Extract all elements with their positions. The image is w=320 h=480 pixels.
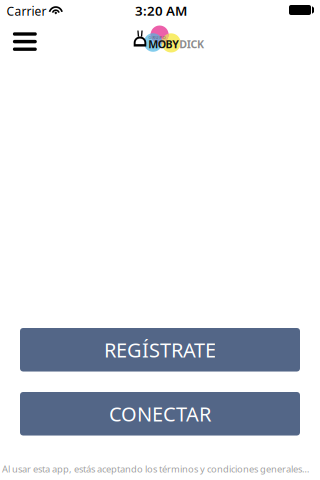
staticText: REGÍSTRATE bbox=[104, 336, 216, 363]
staticText: CONECTAR bbox=[109, 400, 211, 427]
staticText: MOBY bbox=[148, 37, 179, 51]
button[interactable]: Menu bbox=[0, 20, 50, 63]
staticText: G R U P O bbox=[148, 35, 165, 40]
staticText: DICK bbox=[179, 37, 204, 51]
button[interactable]: REGÍSTRATE bbox=[20, 328, 300, 371]
staticText: 3:20 AM bbox=[135, 2, 187, 19]
button[interactable]: CONECTAR bbox=[20, 392, 300, 435]
staticText: Al usar esta app, estás aceptando los té… bbox=[2, 463, 309, 475]
staticText: Carrier bbox=[7, 3, 47, 19]
